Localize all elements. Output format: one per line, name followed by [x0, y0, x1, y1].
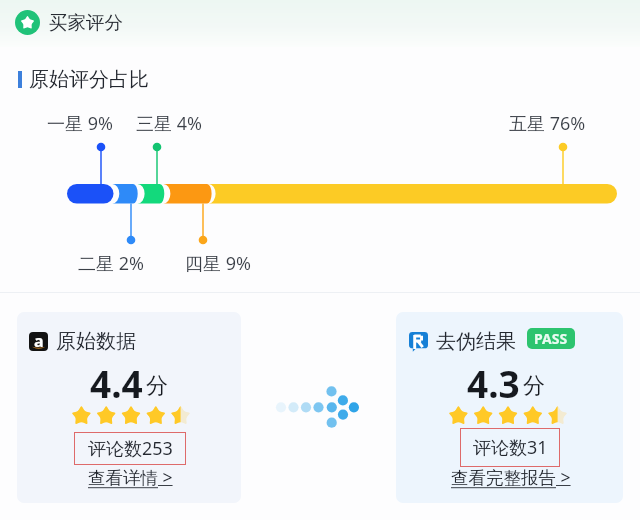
- button[interactable]: 查看详情 >: [88, 465, 173, 489]
- staticText: 去伪结果: [436, 329, 516, 354]
- staticText: 评论数253: [88, 436, 173, 461]
- staticText: a: [34, 332, 44, 349]
- staticText: 4.3: [467, 358, 520, 408]
- button[interactable]: a: [17, 312, 241, 503]
- staticText: 四星 9%: [185, 251, 251, 276]
- staticText: 查看详情 >: [88, 465, 173, 489]
- staticText: 分: [146, 372, 168, 400]
- staticText: 原始评分占比: [29, 67, 149, 92]
- staticText: 分: [523, 372, 545, 400]
- button[interactable]: 买家评分: [15, 10, 123, 35]
- staticText: 一星 9%: [47, 111, 113, 136]
- staticText: 二星 2%: [78, 251, 144, 276]
- staticText: 买家评分: [49, 11, 123, 34]
- staticText: 三星 4%: [136, 111, 202, 136]
- button[interactable]: 去伪结果: [396, 312, 623, 503]
- staticText: 评论数31: [473, 435, 548, 460]
- staticText: PASS: [534, 329, 568, 348]
- button[interactable]: 查看完整报告 >: [451, 465, 571, 489]
- staticText: 五星 76%: [509, 111, 586, 136]
- staticText: 原始数据: [56, 329, 136, 354]
- staticText: 4.4: [90, 358, 143, 408]
- staticText: 查看完整报告 >: [451, 465, 571, 489]
